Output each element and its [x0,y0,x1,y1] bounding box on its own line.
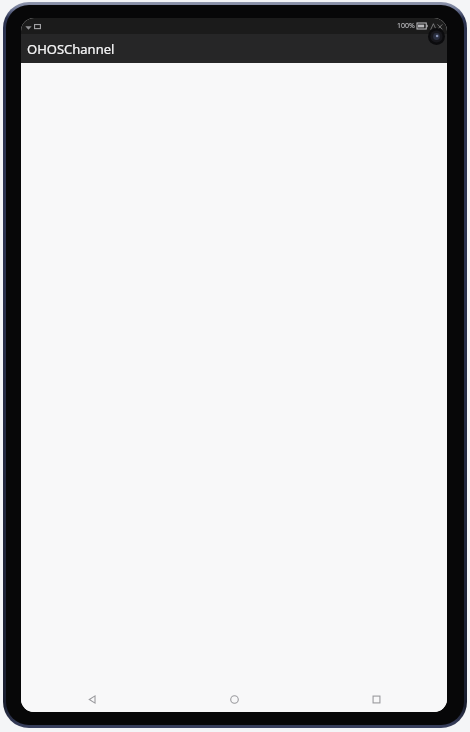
staticText: OHOSChannel [27,40,115,58]
button[interactable]: Home [163,686,305,712]
staticText: 100% [397,21,415,31]
button[interactable]: Back [21,686,163,712]
button[interactable]: Recent apps [305,686,447,712]
